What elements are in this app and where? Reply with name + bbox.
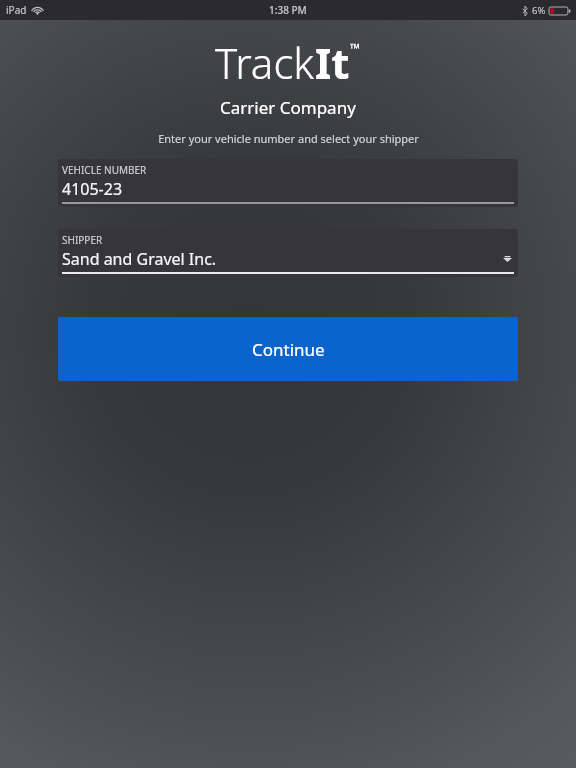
staticText: 1:38 PM xyxy=(269,3,307,17)
staticText: Enter your vehicle number and select you… xyxy=(158,131,419,146)
staticText: VEHICLE NUMBER xyxy=(62,163,147,177)
staticText: SHIPPER xyxy=(62,233,103,247)
staticText: 4105-23 xyxy=(62,178,123,200)
other: Open shipper list xyxy=(503,256,512,262)
staticText: iPad xyxy=(6,3,27,17)
staticText: Continue xyxy=(252,338,325,361)
staticText: It xyxy=(315,34,350,91)
staticText: Track xyxy=(215,34,315,91)
staticText: Carrier Company xyxy=(220,96,356,119)
button[interactable]: VEHICLE NUMBER xyxy=(58,159,518,207)
staticText: Sand and Gravel Inc. xyxy=(62,248,217,270)
button[interactable]: Continue xyxy=(58,317,518,381)
button[interactable]: SHIPPER xyxy=(58,229,518,277)
staticText: 6% xyxy=(532,4,546,17)
staticText: ™ xyxy=(350,39,361,57)
